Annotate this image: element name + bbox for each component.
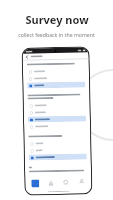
button[interactable] <box>28 139 86 147</box>
button[interactable]: Surveys <box>29 177 40 189</box>
button[interactable]: Notifications <box>60 177 71 188</box>
button[interactable] <box>27 81 85 89</box>
button[interactable]: Survey now <box>0 12 113 27</box>
button[interactable] <box>29 146 87 154</box>
button[interactable] <box>28 115 86 123</box>
button[interactable]: Results <box>45 177 56 188</box>
button[interactable] <box>28 101 86 109</box>
button[interactable]: Profile <box>76 176 87 188</box>
button[interactable] <box>28 122 86 130</box>
staticText: collect feedback in the moment <box>0 31 113 38</box>
staticText: Survey now <box>25 12 89 27</box>
button[interactable] <box>28 108 86 116</box>
button[interactable] <box>27 74 85 82</box>
button[interactable] <box>29 153 87 161</box>
button[interactable] <box>27 67 85 75</box>
